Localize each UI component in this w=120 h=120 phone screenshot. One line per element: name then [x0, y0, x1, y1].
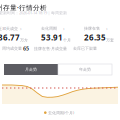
- staticText: 挂牌在售·月成交量: [34, 46, 67, 51]
- staticText: ›: [20, 25, 22, 32]
- staticText: 去库已下架量: [73, 46, 97, 51]
- staticText: ›: [106, 25, 108, 32]
- staticText: 个月: [63, 38, 71, 43]
- staticText: 年走势: [79, 67, 91, 72]
- button[interactable]: 周均成交量: [2, 45, 29, 52]
- button[interactable]: 挂牌在售: [84, 25, 120, 43]
- button[interactable]: 挂牌在售·月成交量: [34, 45, 68, 52]
- staticText: 挂牌在售: [84, 26, 100, 31]
- staticText: 26.35: [84, 32, 106, 43]
- button[interactable]: 去化周期: [41, 25, 81, 43]
- staticText: 万方: [20, 38, 28, 43]
- staticText: 周均成交量: [2, 46, 22, 51]
- staticText: ›: [63, 25, 65, 32]
- staticText: 月走势: [25, 67, 37, 72]
- button[interactable]: 去库已下架量: [73, 45, 98, 52]
- button[interactable]: 近30天成交: [0, 25, 38, 43]
- staticText: 53.91: [41, 32, 63, 43]
- button[interactable]: 年走势: [58, 64, 112, 75]
- staticText: 去化周期: [41, 26, 57, 31]
- staticText: 86.77: [0, 32, 20, 43]
- staticText: 去化周期(个月): [48, 110, 74, 115]
- staticText: 更新时间：2026-01-14 18:19｜每周更新: [0, 10, 67, 15]
- staticText: 万套: [106, 38, 114, 43]
- staticText: 近30天成交: [0, 26, 18, 31]
- staticText: 杭州存量·行情分析: [0, 3, 47, 12]
- button[interactable]: 月走势: [4, 64, 58, 75]
- staticText: 65: [23, 45, 29, 52]
